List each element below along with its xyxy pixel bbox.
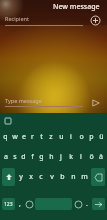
staticText: h	[49, 152, 54, 162]
staticText: New message	[53, 2, 100, 12]
button[interactable]: l	[76, 147, 86, 167]
staticText: p	[89, 132, 94, 142]
staticText: s	[13, 152, 17, 162]
button[interactable]: s	[10, 147, 19, 167]
staticText: z	[49, 132, 53, 142]
button[interactable]: j	[56, 147, 66, 167]
staticText: .	[86, 199, 88, 209]
button[interactable]: ü	[96, 127, 106, 147]
button[interactable]: z	[46, 127, 56, 147]
button[interactable]: p	[86, 127, 96, 147]
staticText: i	[70, 132, 72, 142]
button[interactable]: r	[28, 127, 37, 147]
button[interactable]: Clipboard	[3, 116, 12, 125]
staticText: ü	[99, 132, 104, 142]
button[interactable]: x	[26, 167, 36, 187]
button[interactable]: i	[66, 127, 76, 147]
button[interactable]: Voice input	[73, 197, 83, 211]
staticText: e	[22, 132, 26, 142]
button[interactable]: b	[57, 167, 68, 187]
button[interactable]: Add recipient	[89, 14, 102, 27]
button[interactable]: y	[16, 167, 26, 187]
staticText: Recipient	[5, 15, 29, 22]
staticText: v	[50, 172, 54, 182]
staticText: o	[79, 132, 84, 142]
button[interactable]: w	[10, 127, 19, 147]
button[interactable]: o	[76, 127, 86, 147]
button[interactable]: q	[1, 127, 10, 147]
staticText: w	[12, 132, 18, 142]
button[interactable]: k	[66, 147, 76, 167]
staticText: f	[31, 152, 34, 162]
button[interactable]: g	[37, 147, 46, 167]
button[interactable]: d	[19, 147, 28, 167]
staticText: d	[21, 152, 26, 162]
button[interactable]: 123	[2, 198, 15, 210]
button[interactable]: f	[28, 147, 37, 167]
staticText: ä	[99, 152, 103, 162]
button[interactable]: Enter	[92, 198, 105, 210]
staticText: ,	[19, 199, 21, 209]
staticText: r	[31, 132, 34, 142]
button[interactable]: n	[68, 167, 79, 187]
staticText: m	[81, 172, 88, 182]
staticText: 123	[4, 201, 13, 208]
button[interactable]: Shift	[2, 168, 15, 186]
button[interactable]: ö	[86, 147, 96, 167]
staticText: c	[39, 172, 43, 182]
button[interactable]: c	[36, 167, 46, 187]
staticText: b	[60, 172, 65, 182]
button[interactable]: Backspace	[91, 168, 105, 186]
button[interactable]: Send	[89, 96, 102, 109]
staticText: g	[39, 152, 44, 162]
staticText: n	[71, 172, 76, 182]
button[interactable]: ,	[16, 197, 24, 211]
staticText: k	[69, 152, 73, 162]
button[interactable]: Emoji	[24, 197, 34, 211]
button[interactable]: e	[19, 127, 28, 147]
button[interactable]: ä	[96, 147, 106, 167]
staticText: ö	[89, 152, 94, 162]
staticText: u	[59, 132, 64, 142]
staticText: y	[19, 172, 23, 182]
staticText: a	[4, 152, 8, 162]
staticText: q	[3, 132, 8, 142]
staticText: x	[29, 172, 33, 182]
button[interactable]: t	[37, 127, 46, 147]
button[interactable]: h	[46, 147, 56, 167]
button[interactable]: .	[83, 197, 91, 211]
staticText: l	[80, 152, 82, 162]
staticText: j	[60, 152, 62, 162]
staticText: Type message	[5, 97, 42, 104]
button[interactable]: a	[1, 147, 10, 167]
button[interactable]: m	[79, 167, 90, 187]
button[interactable]: v	[46, 167, 57, 187]
button[interactable]: u	[56, 127, 66, 147]
staticText: t	[40, 132, 43, 142]
